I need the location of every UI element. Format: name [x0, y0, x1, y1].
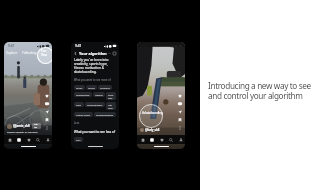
button[interactable]: Create [24, 135, 33, 144]
button[interactable]: Share [43, 108, 51, 116]
button[interactable]: Ads [74, 137, 83, 142]
button[interactable]: #skateboarding [139, 111, 163, 115]
button[interactable]: Follow [32, 123, 41, 129]
staticText: Snowboarding [96, 113, 114, 116]
staticText: Less [74, 121, 80, 125]
staticText: Explore [6, 51, 18, 55]
button[interactable]: Photography [85, 102, 105, 107]
staticText: sunset session at the park [7, 130, 38, 133]
staticText: What you want to see less of [74, 130, 115, 134]
staticText: Ads [76, 138, 81, 141]
staticText: Lately you've been into creativity, spor… [74, 58, 116, 74]
button[interactable]: Back [73, 51, 78, 56]
button[interactable]: More options [107, 51, 112, 56]
staticText: #skateboarding [142, 111, 163, 115]
button[interactable]: Snowboarding [94, 112, 116, 117]
button[interactable]: Discover [147, 135, 156, 144]
button[interactable]: Cooking [98, 85, 112, 90]
staticText: 9:41 [75, 44, 82, 48]
button[interactable]: Music [86, 85, 97, 90]
staticText: @jamie_sk8 [13, 124, 30, 128]
staticText: Music [88, 86, 95, 89]
staticText: 9:41 [8, 44, 15, 48]
button[interactable]: Save [176, 116, 184, 124]
button[interactable]: Sport [74, 85, 85, 90]
staticText: Photography [87, 103, 103, 106]
button[interactable]: Discover [14, 135, 23, 144]
button[interactable]: Comment [176, 100, 184, 108]
staticText: Skateboard [76, 93, 90, 96]
button[interactable]: Create [157, 135, 166, 144]
staticText: Urban sport [76, 113, 91, 116]
button[interactable]: Following [20, 51, 39, 55]
button[interactable]: Hip hop [106, 102, 116, 110]
staticText: Hip hop [108, 103, 114, 109]
button[interactable]: Home [138, 135, 147, 144]
staticText: Following [22, 51, 37, 55]
staticText: Pets [76, 103, 82, 106]
staticText: Hiking [95, 93, 103, 96]
button[interactable]: Settings [112, 51, 117, 56]
button[interactable]: Home [5, 135, 14, 144]
staticText: @kaly_sk8 [145, 128, 160, 132]
staticText: What you want to see more of [74, 78, 111, 82]
button[interactable]: Save [43, 116, 51, 124]
button[interactable]: More [176, 124, 184, 132]
staticText: Cooking [100, 86, 110, 89]
button[interactable]: Like [176, 92, 184, 100]
button[interactable]: Inbox [166, 135, 175, 144]
button[interactable]: Tech talk [106, 92, 116, 100]
button[interactable]: Share [176, 108, 184, 116]
button[interactable]: Urban sport [74, 112, 93, 117]
button[interactable]: Profile [176, 135, 185, 144]
button[interactable]: Comment [43, 100, 51, 108]
button[interactable]: Skateboard [74, 92, 92, 97]
staticText: Introducing a new way to see and control… [208, 80, 320, 101]
button[interactable]: For You [39, 49, 52, 56]
staticText: Follow [34, 123, 39, 129]
staticText: Sport [76, 86, 83, 89]
button[interactable]: Hiking [93, 92, 105, 97]
staticText: Your algorithm [79, 51, 107, 56]
button[interactable]: Profile [43, 135, 52, 144]
button[interactable]: Inbox [33, 135, 42, 144]
button[interactable]: Like [43, 92, 51, 100]
staticText: Tech talk [108, 93, 114, 99]
staticText: For You [41, 49, 50, 56]
button[interactable]: Pets [74, 102, 84, 107]
button[interactable]: Explore [4, 51, 20, 55]
button[interactable]: More [43, 124, 51, 132]
